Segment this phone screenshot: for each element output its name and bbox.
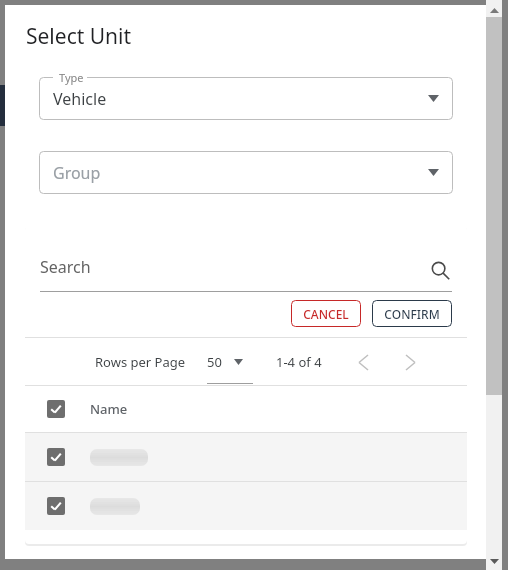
button[interactable]: Selected: [25, 433, 467, 481]
staticText: Rows per Page: [95, 353, 186, 371]
staticText: Vehicle: [53, 88, 107, 110]
staticText: Select Unit: [26, 22, 132, 51]
button[interactable]: Previous page: [352, 351, 374, 373]
button[interactable]: CANCEL: [291, 300, 361, 327]
staticText: Name: [90, 400, 128, 418]
button[interactable]: Selected: [25, 482, 467, 530]
button[interactable]: Selected: [47, 497, 65, 515]
staticText: 1-4 of 4: [276, 353, 322, 371]
button[interactable]: Search: [40, 226, 452, 292]
button[interactable]: Next page: [399, 351, 421, 373]
button[interactable]: Type: [39, 77, 453, 120]
staticText: Type: [59, 70, 84, 85]
staticText: Group: [53, 162, 101, 184]
button[interactable]: CONFIRM: [372, 300, 452, 327]
button[interactable]: Group: [39, 151, 453, 194]
staticText: 50: [207, 353, 222, 371]
staticText: CONFIRM: [384, 306, 440, 322]
button[interactable]: Selected: [25, 386, 467, 432]
button[interactable]: Selected: [47, 448, 65, 466]
staticText: Search: [40, 256, 91, 278]
button[interactable]: 50: [207, 353, 253, 371]
button[interactable]: Selected: [47, 400, 65, 418]
staticText: CANCEL: [303, 306, 349, 322]
